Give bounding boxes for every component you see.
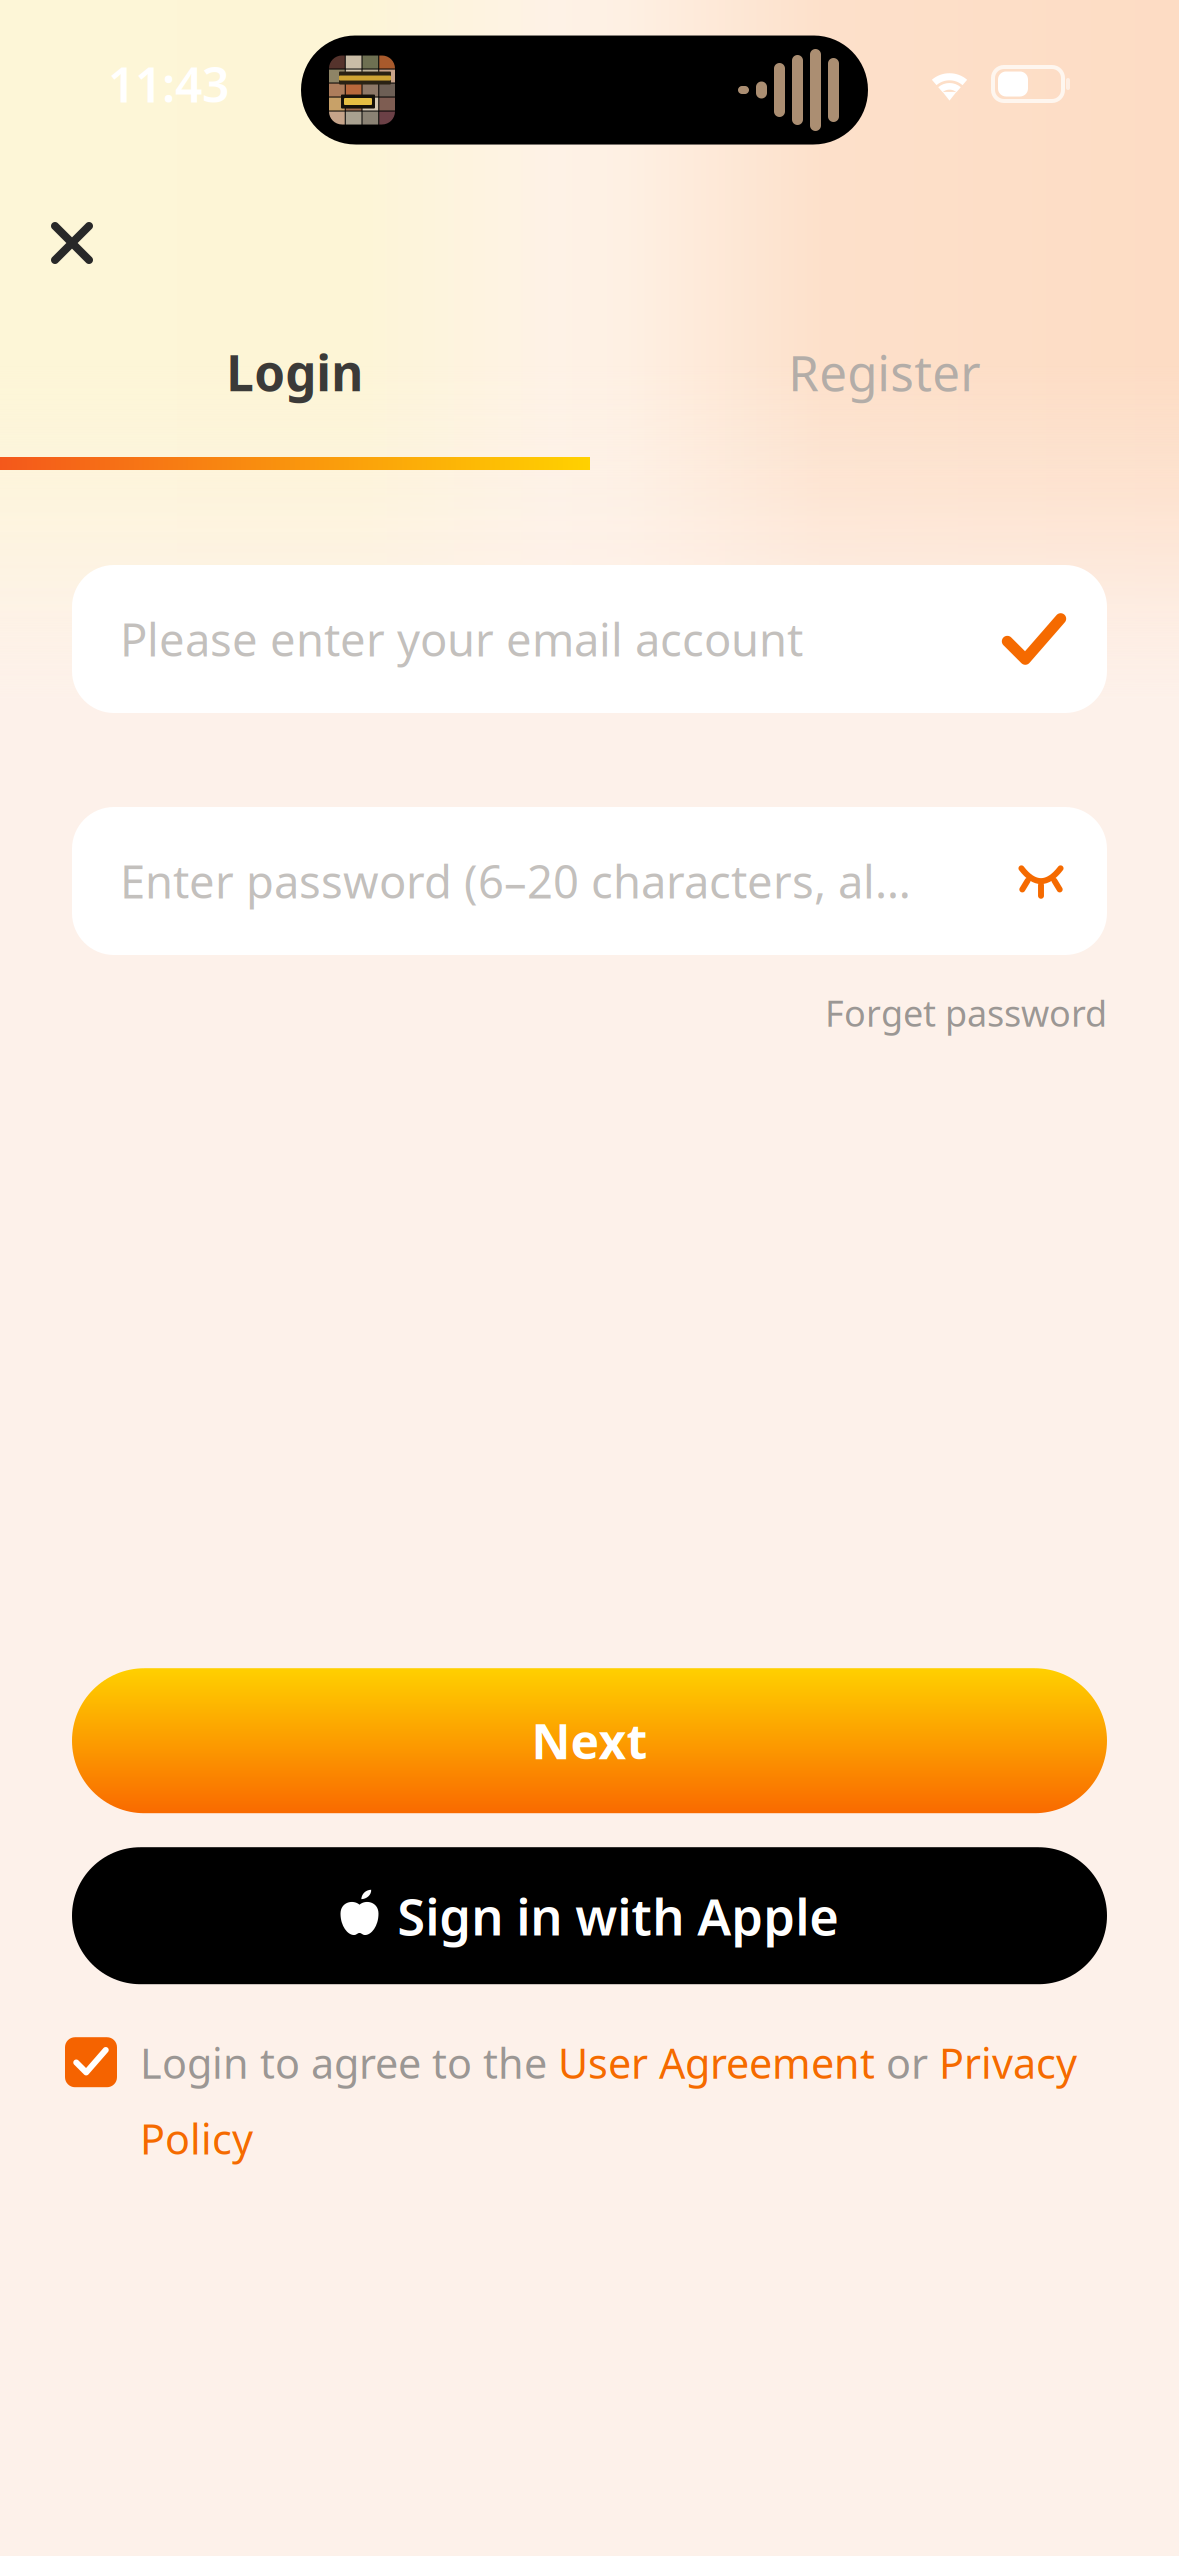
staticText: User Agreement [558, 2035, 875, 2090]
staticText: Login to agree to the [140, 2035, 558, 2090]
staticText: Privacy [939, 2035, 1077, 2090]
staticText: Register [788, 339, 980, 405]
button[interactable]: Sign in with Apple [72, 1847, 1107, 1984]
staticText: Sign in with Apple [397, 1882, 839, 1949]
button[interactable]: Login [0, 324, 589, 420]
staticText: 11:43 [108, 52, 229, 116]
button[interactable]: Close [21, 192, 123, 294]
button[interactable]: Agree to terms [65, 2037, 117, 2087]
button[interactable]: Register [589, 324, 1179, 420]
staticText: or [875, 2035, 939, 2090]
staticText: Forget password [825, 989, 1107, 1037]
staticText: Policy [140, 2111, 253, 2166]
staticText: Login [226, 339, 363, 405]
staticText: Enter password (6–20 characters, al… [120, 851, 911, 911]
staticText: Please enter your email account [120, 609, 803, 669]
button[interactable]: Forget password [825, 973, 1107, 1053]
staticText: Next [531, 1709, 647, 1773]
button[interactable]: Next [72, 1668, 1107, 1813]
